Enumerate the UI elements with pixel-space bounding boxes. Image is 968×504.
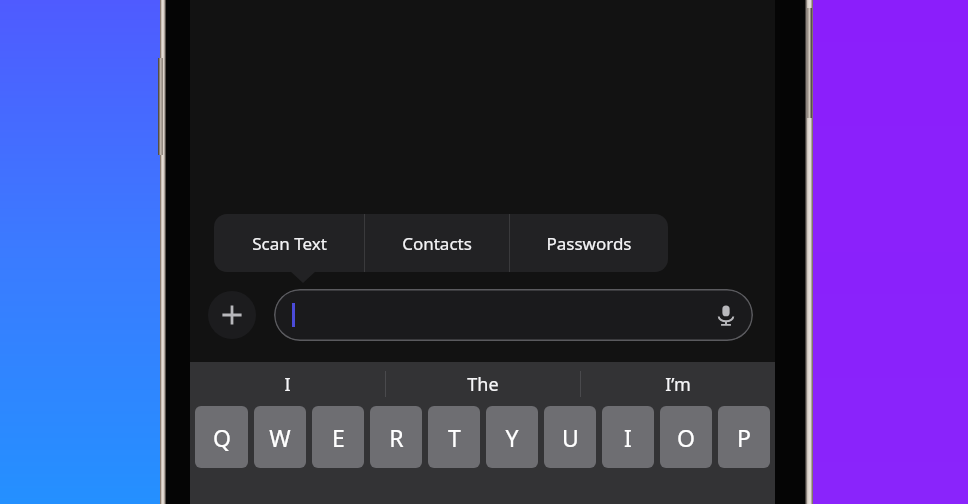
staticText: Contacts	[402, 232, 472, 255]
button[interactable]: T	[428, 406, 480, 468]
button[interactable]: E	[312, 406, 364, 468]
staticText: E	[332, 422, 345, 453]
button[interactable]: Q	[195, 406, 248, 468]
staticText: O	[677, 422, 695, 453]
button[interactable]: O	[660, 406, 712, 468]
staticText: P	[737, 422, 751, 453]
button[interactable]: Y	[486, 406, 538, 468]
staticText: Scan Text	[252, 232, 327, 255]
staticText: T	[448, 422, 461, 453]
button[interactable]: R	[370, 406, 422, 468]
staticText: Passwords	[546, 232, 632, 255]
button[interactable]: Scan Text	[214, 214, 364, 272]
staticText: The	[467, 372, 499, 397]
button[interactable]: I’m	[581, 362, 775, 406]
staticText: Q	[213, 422, 231, 453]
button[interactable]: Contacts	[365, 214, 509, 272]
button[interactable]: I	[602, 406, 654, 468]
button[interactable]: Dictate	[274, 289, 753, 341]
button[interactable]: P	[718, 406, 770, 468]
button[interactable]: I	[190, 362, 385, 406]
button[interactable]: Passwords	[510, 214, 668, 272]
staticText: I	[284, 372, 291, 397]
staticText: I	[624, 422, 632, 453]
staticText: Y	[505, 422, 519, 453]
button[interactable]: Dictate	[709, 298, 743, 332]
button[interactable]: Add attachment	[208, 291, 256, 339]
button[interactable]: W	[254, 406, 306, 468]
button[interactable]: The	[386, 362, 580, 406]
button[interactable]: U	[544, 406, 596, 468]
staticText: W	[269, 422, 291, 453]
staticText: I’m	[665, 372, 691, 397]
staticText: R	[389, 422, 404, 453]
staticText: U	[562, 422, 579, 453]
